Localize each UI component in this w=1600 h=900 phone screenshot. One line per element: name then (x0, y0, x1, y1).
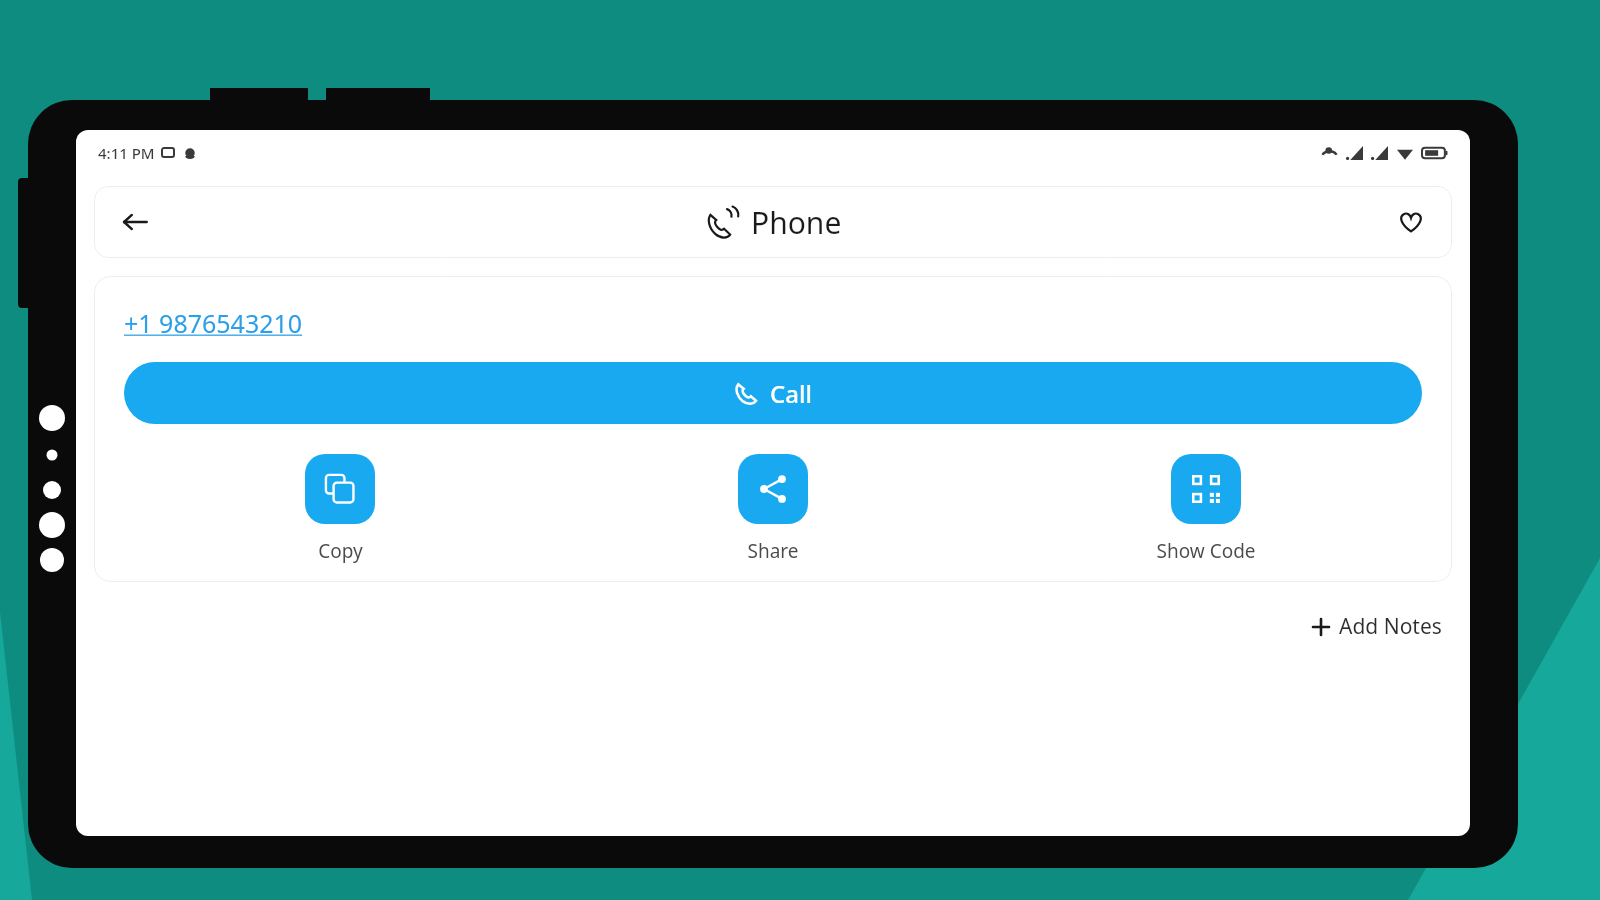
button[interactable]: Show Code (989, 454, 1422, 564)
button[interactable]: Share (556, 454, 989, 564)
button[interactable]: +1 9876543210 (124, 306, 303, 340)
button[interactable]: Call (124, 362, 1422, 424)
staticText: 4:11 PM (98, 143, 155, 163)
staticText: Add Notes (1339, 612, 1442, 641)
button[interactable]: Copy (124, 454, 556, 564)
button[interactable]: Add Notes (1305, 606, 1448, 647)
button[interactable]: Back (112, 199, 158, 245)
staticText: Call (770, 377, 812, 410)
staticText: Phone (751, 202, 842, 243)
button[interactable]: Favorite (1388, 199, 1434, 245)
staticText: +1 9876543210 (124, 306, 303, 340)
staticText: Show Code (1156, 538, 1256, 564)
staticText: Copy (318, 538, 363, 564)
staticText: Share (747, 538, 799, 564)
